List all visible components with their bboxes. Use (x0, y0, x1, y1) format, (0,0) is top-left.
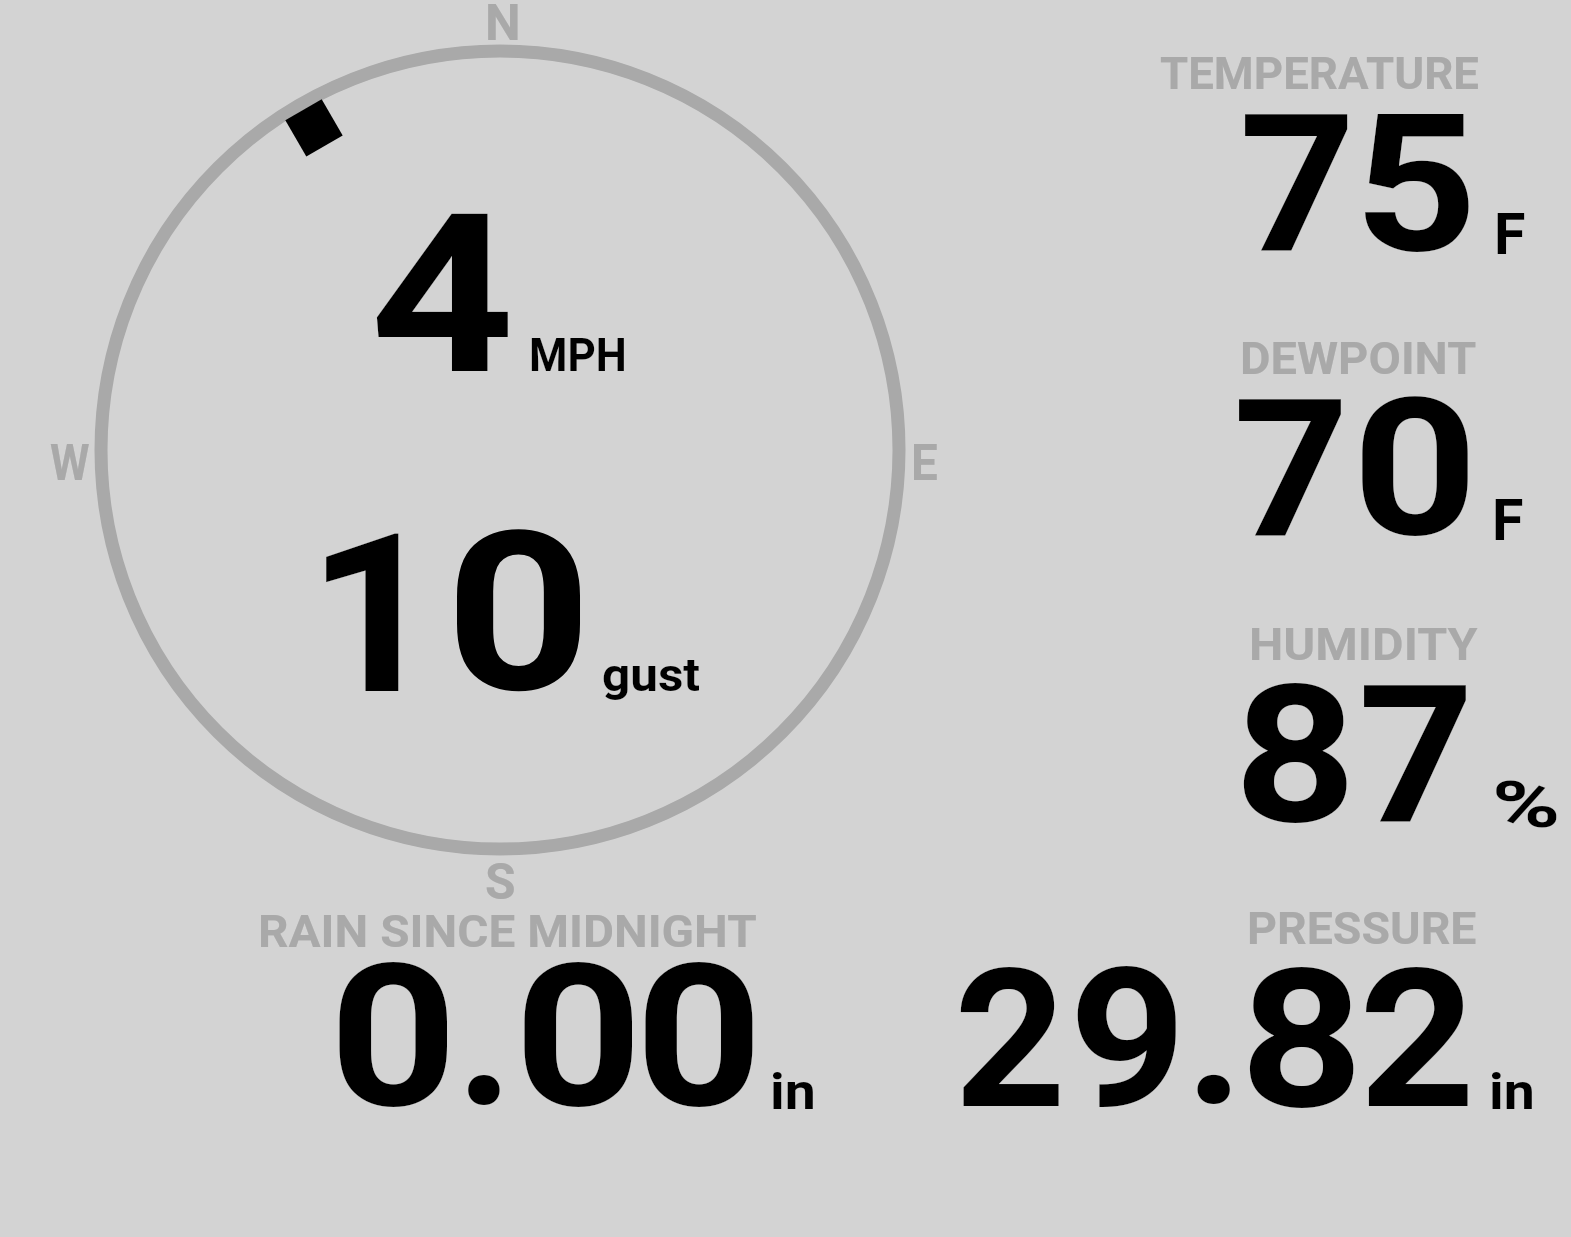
staticText: 0 (329, 921, 458, 1146)
staticText: PRESSURE (1247, 902, 1477, 955)
staticText: 7 (1233, 358, 1350, 581)
staticText: 7 (1239, 73, 1356, 296)
staticText: % (1492, 767, 1561, 842)
staticText: F (1494, 201, 1526, 268)
button[interactable]: Rain since midnight 0.00 inches (255, 898, 820, 1123)
staticText: DEWPOINT (1240, 332, 1477, 385)
staticText: 4 (370, 165, 516, 425)
staticText: 2 (1359, 927, 1476, 1153)
button[interactable]: Pressure 29.82 inches (940, 895, 1545, 1123)
staticText: 0 (635, 921, 763, 1146)
staticText: . (456, 920, 514, 1145)
staticText: S (485, 852, 516, 911)
staticText: RAIN SINCE MIDNIGHT (258, 905, 758, 958)
staticText: 9 (1069, 927, 1186, 1153)
staticText: MPH (529, 328, 627, 382)
staticText: 0 (514, 921, 643, 1146)
staticText: E (911, 433, 938, 492)
button[interactable]: Temperature 75 degrees Fahrenheit (1150, 40, 1560, 268)
staticText: HUMIDITY (1249, 618, 1478, 671)
staticText: N (485, 0, 521, 52)
staticText: F (1492, 487, 1524, 554)
staticText: 1 (307, 485, 442, 745)
staticText: 0 (445, 483, 593, 743)
button[interactable]: Humidity 87 percent (1150, 611, 1565, 839)
staticText: . (1185, 924, 1245, 1150)
staticText: gust (602, 647, 701, 702)
staticText: 8 (1234, 644, 1357, 867)
staticText: in (770, 1063, 816, 1122)
staticText: W (50, 433, 90, 492)
staticText: in (1489, 1063, 1535, 1122)
staticText: 5 (1354, 73, 1478, 296)
staticText: 2 (954, 927, 1066, 1153)
button[interactable]: Dewpoint 70 degrees Fahrenheit (1150, 325, 1560, 553)
staticText: TEMPERATURE (1160, 47, 1479, 100)
staticText: 7 (1358, 644, 1475, 867)
button[interactable]: Wind direction dial (61, 11, 939, 889)
staticText: 8 (1240, 927, 1364, 1153)
staticText: 0 (1352, 357, 1479, 580)
